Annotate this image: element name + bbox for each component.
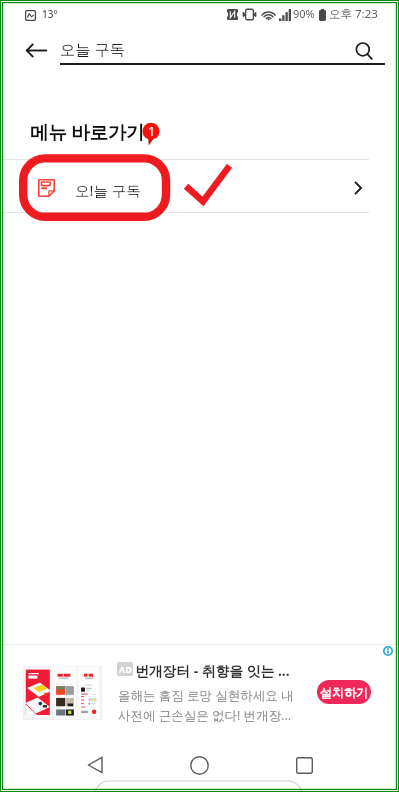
- button[interactable]: Back: [20, 34, 52, 66]
- staticText: 메뉴 바로가기: [30, 119, 145, 144]
- other: Ad information: [383, 646, 393, 656]
- staticText: 오!늘 구독: [75, 180, 141, 200]
- staticText: 올해는 홈짐 로망 실현하세요 내 사전에 근손실은 없다! 번개장...: [118, 687, 296, 723]
- staticText: AD: [119, 663, 132, 675]
- staticText: 1: [148, 123, 156, 140]
- staticText: 번개장터 - 취향을 잇는 ...: [135, 661, 305, 680]
- staticText: 오후 7:23: [329, 6, 378, 22]
- button[interactable]: 오!늘 구독: [0, 159, 399, 212]
- staticText: 90%: [293, 6, 315, 21]
- button[interactable]: Search: [346, 33, 382, 69]
- button[interactable]: Recent apps: [282, 743, 326, 787]
- button[interactable]: Back: [73, 743, 117, 787]
- staticText: 오늘 구독: [60, 39, 126, 60]
- button[interactable]: 설치하기: [317, 680, 371, 704]
- staticText: 13°: [42, 7, 58, 21]
- staticText: 설치하기: [320, 685, 368, 700]
- button[interactable]: Home: [177, 743, 221, 787]
